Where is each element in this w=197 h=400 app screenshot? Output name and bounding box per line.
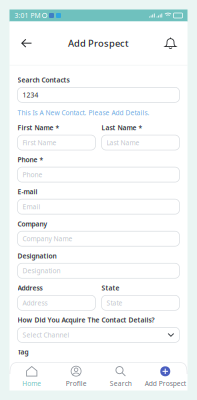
button[interactable]: Notifications (159, 28, 181, 58)
staticText: Phone (22, 170, 42, 179)
staticText: Tag (17, 348, 28, 356)
staticText: Address (17, 283, 42, 292)
staticText: Select Channel (22, 330, 69, 339)
staticText: How Did You Acquire The Contact Details? (17, 315, 154, 324)
staticText: Search Contacts (17, 75, 69, 84)
staticText: Designation (17, 251, 56, 260)
staticText: Profile (66, 379, 87, 388)
staticText: State (101, 283, 119, 292)
staticText: Designation (22, 266, 60, 275)
staticText: Company (17, 219, 47, 228)
button[interactable]: Back (15, 28, 37, 58)
button[interactable]: Select Channel (17, 327, 179, 342)
staticText: Last Name (106, 138, 139, 147)
staticText: 3:01 PM (14, 11, 40, 20)
button[interactable]: Search (98, 362, 143, 391)
staticText: State (106, 298, 122, 307)
staticText: Last Name * (101, 123, 142, 132)
staticText: Address (22, 298, 47, 307)
button[interactable]: Profile (54, 362, 98, 391)
staticText: 1234 (22, 90, 38, 99)
staticText: Home (22, 379, 41, 388)
staticText: This Is A New Contact. Please Add Detail… (17, 108, 149, 117)
staticText: First Name * (17, 123, 59, 132)
button[interactable]: Home (9, 362, 54, 391)
staticText: Add Prospect (145, 379, 186, 388)
staticText: Email (22, 202, 40, 211)
staticText: E-mail (17, 187, 37, 196)
staticText: Phone * (17, 155, 43, 164)
staticText: Company Name (22, 234, 72, 243)
staticText: First Name (22, 138, 56, 147)
staticText: Add Prospect (68, 37, 129, 49)
staticText: Search (110, 379, 132, 388)
button[interactable]: Add Prospect (143, 362, 187, 391)
